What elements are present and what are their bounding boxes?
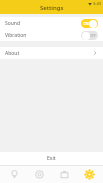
button[interactable]: Exit [0,152,103,165]
button[interactable]: Vibration [0,29,103,41]
button[interactable]: Turn on [81,31,98,40]
staticText: ON [83,21,89,26]
staticText: Sound [5,20,21,27]
button[interactable]: Record [28,165,50,183]
staticText: About [5,50,20,57]
other: Open About [92,50,98,56]
staticText: Settings [40,4,64,12]
staticText: Vibration [5,32,27,39]
button[interactable]: Turn off [81,19,98,28]
button[interactable]: Settings [78,165,100,183]
staticText: OFF [89,33,96,38]
button[interactable]: About [0,47,103,59]
button[interactable]: Sound [0,17,103,29]
staticText: Exit [47,155,56,162]
button[interactable]: Flash [3,165,25,183]
button[interactable]: Gallery [53,165,75,183]
staticText: 3:43 [93,1,101,6]
